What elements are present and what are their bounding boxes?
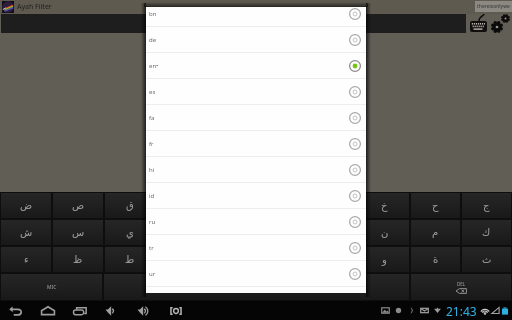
button[interactable] — [104, 274, 409, 300]
staticText: ء — [24, 254, 29, 266]
button[interactable]: ة — [411, 247, 460, 272]
button[interactable]: س — [53, 220, 103, 245]
other: Location — [431, 301, 444, 320]
button[interactable]: م — [411, 220, 460, 245]
staticText: م — [432, 227, 439, 239]
button[interactable]: Back — [0, 301, 32, 320]
button[interactable]: de — [146, 27, 366, 52]
button[interactable]: غ — [207, 193, 256, 218]
staticText: ف — [175, 200, 186, 212]
staticText: ع — [280, 200, 286, 212]
staticText: ش — [20, 227, 33, 239]
button[interactable]: ت — [309, 220, 358, 245]
button[interactable]: tr — [146, 235, 366, 260]
staticText: ه — [331, 200, 337, 212]
button[interactable]: ق — [105, 193, 154, 218]
button[interactable]: ء — [1, 247, 51, 272]
button[interactable]: hi — [146, 157, 366, 182]
staticText: es — [149, 88, 156, 96]
staticText: ث — [482, 254, 492, 266]
button[interactable]: ز — [258, 247, 307, 272]
button[interactable]: ظ — [53, 247, 103, 272]
other: Mail — [418, 301, 431, 320]
button[interactable]: fr — [146, 131, 366, 156]
button[interactable]: ع — [258, 193, 307, 218]
button[interactable]: Volume up — [128, 301, 160, 320]
button[interactable]: id — [146, 183, 366, 208]
other: Screen capture — [379, 301, 392, 320]
staticText: DEL — [457, 281, 466, 287]
button[interactable]: fa — [146, 105, 366, 130]
button[interactable]: Settings — [488, 10, 512, 34]
button[interactable]: DEL — [411, 274, 511, 300]
staticText: hi — [149, 166, 155, 174]
button[interactable]: ن — [360, 220, 409, 245]
staticText: ح — [432, 200, 439, 212]
staticText: ا — [281, 227, 284, 239]
button[interactable]: MIC — [1, 274, 102, 300]
button[interactable]: bn — [146, 7, 366, 26]
staticText: ض — [20, 200, 33, 212]
staticText: Ayah Filter — [17, 2, 52, 12]
staticText: fa — [149, 114, 155, 122]
staticText: ق — [126, 200, 134, 212]
staticText: tr — [149, 244, 154, 252]
button[interactable]: ج — [462, 193, 511, 218]
staticText: ط — [125, 254, 135, 266]
button[interactable]: es — [146, 79, 366, 104]
button[interactable]: ف — [156, 193, 205, 218]
other: Recording — [392, 301, 405, 320]
staticText: de — [149, 36, 157, 44]
staticText: ن — [381, 227, 389, 239]
staticText: 21:43 — [446, 303, 477, 319]
button[interactable]: Screenshot — [160, 301, 192, 320]
button[interactable]: Volume down — [96, 301, 128, 320]
button[interactable]: ل — [207, 220, 256, 245]
staticText: ب — [176, 227, 186, 239]
button[interactable]: Keyboard — [466, 13, 490, 35]
button[interactable]: ش — [1, 220, 51, 245]
button[interactable]: en• — [146, 53, 366, 78]
staticText: ر — [331, 254, 336, 266]
button[interactable]: ه — [309, 193, 358, 218]
staticText: ذ — [178, 254, 183, 266]
staticText: ص — [72, 200, 85, 212]
staticText: ي — [126, 227, 134, 239]
staticText: ة — [433, 254, 439, 266]
staticText: ru — [149, 218, 156, 226]
staticText: ج — [483, 200, 490, 212]
staticText: خ — [381, 200, 388, 212]
staticText: bn — [149, 10, 157, 18]
button[interactable]: ر — [309, 247, 358, 272]
staticText: ur — [149, 270, 156, 278]
button[interactable]: ط — [105, 247, 154, 272]
button[interactable]: ض — [1, 193, 51, 218]
staticText: ز — [280, 254, 285, 266]
button[interactable]: ك — [462, 220, 511, 245]
staticText: id — [149, 192, 155, 200]
other: Do not disturb — [405, 301, 418, 320]
button[interactable]: ي — [105, 220, 154, 245]
staticText: en• — [149, 62, 159, 70]
button[interactable]: ذ — [156, 247, 205, 272]
staticText: fr — [149, 140, 154, 148]
button[interactable]: ur — [146, 261, 366, 286]
button[interactable]: ح — [411, 193, 460, 218]
staticText: ك — [482, 227, 491, 239]
button[interactable]: ث — [462, 247, 511, 272]
staticText: ل — [228, 227, 236, 239]
button[interactable]: و — [360, 247, 409, 272]
staticText: س — [72, 227, 85, 239]
button[interactable]: د — [207, 247, 256, 272]
button[interactable]: Home — [32, 301, 64, 320]
staticText: thereisonlywe — [477, 3, 510, 10]
button[interactable]: ص — [53, 193, 103, 218]
button[interactable]: Recent apps — [64, 301, 96, 320]
button[interactable]: ب — [156, 220, 205, 245]
button[interactable]: خ — [360, 193, 409, 218]
button[interactable]: ا — [258, 220, 307, 245]
button[interactable]: ru — [146, 209, 366, 234]
staticText: و — [382, 254, 387, 266]
staticText: ت — [329, 227, 339, 239]
button[interactable] — [1, 14, 466, 33]
